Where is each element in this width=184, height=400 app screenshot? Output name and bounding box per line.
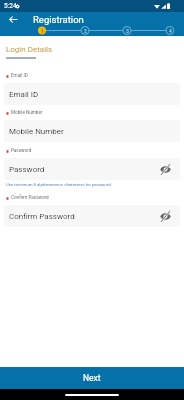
staticText: 5:24 [4,2,17,10]
button[interactable]: Password [4,158,180,180]
button[interactable]: Step 4 [165,26,175,36]
button[interactable]: Step 3 [122,26,132,36]
staticText: Email ID [9,90,39,99]
staticText: Use minimum 8 alphanumeric characters fo… [6,182,111,187]
staticText: Login Details [6,45,53,54]
staticText: 1 [41,28,44,34]
button[interactable]: Step 2 [80,26,90,36]
button[interactable]: Next [0,367,184,389]
staticText: Mobile Number [11,110,43,115]
button[interactable]: Toggle password visibility [159,163,172,176]
button[interactable]: Email ID [4,83,180,105]
staticText: Password [9,165,45,174]
staticText: 2 [84,28,87,34]
staticText: 3 [126,28,129,34]
button[interactable]: Login Details [6,45,53,59]
button[interactable]: Step 1 [37,26,47,36]
staticText: Email ID [11,73,28,78]
staticText: Confirm Password [9,212,75,221]
staticText: Next [83,373,101,383]
staticText: Password [11,148,32,153]
staticText: Confirm Password [11,195,49,200]
button[interactable]: Back [0,12,26,26]
staticText: Mobile Number [9,127,64,136]
button[interactable]: Mobile Number [4,120,180,142]
staticText: Registration [33,14,84,25]
button[interactable]: Toggle password visibility [159,210,172,223]
button[interactable]: Confirm Password [4,205,180,227]
staticText: 4 [169,28,172,34]
